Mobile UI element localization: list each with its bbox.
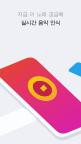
- staticText: 지금 이 노래 궁금해: [17, 11, 63, 18]
- staticText: 실시간 음악 인식: [21, 20, 60, 26]
